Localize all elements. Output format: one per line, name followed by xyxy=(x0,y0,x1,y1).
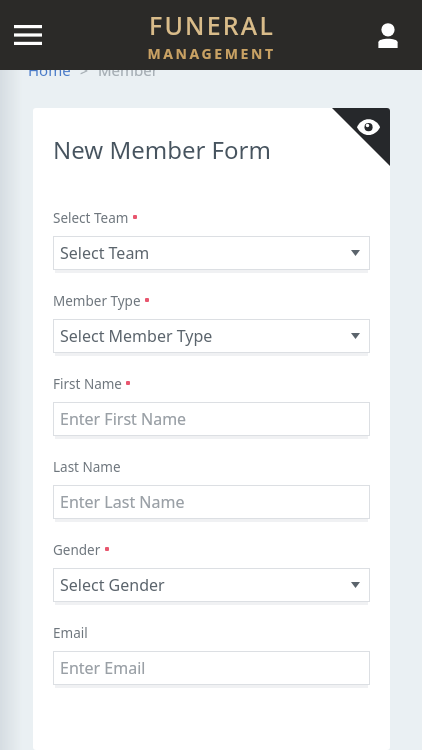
staticText: MANAGEMENT xyxy=(147,44,276,63)
staticText: FUNERAL xyxy=(149,8,275,42)
staticText: Select Team xyxy=(60,242,150,264)
button[interactable]: Select Team xyxy=(53,236,370,270)
staticText: Enter Last Name xyxy=(60,491,185,513)
staticText: New Member Form xyxy=(53,133,271,166)
staticText: Enter First Name xyxy=(60,408,187,430)
button[interactable]: Enter Email xyxy=(53,651,370,685)
button[interactable]: Account xyxy=(366,13,410,57)
button[interactable]: Select Gender xyxy=(53,568,370,602)
staticText: Select Member Type xyxy=(60,325,213,347)
button[interactable]: Home xyxy=(28,60,71,80)
staticText: Enter Email xyxy=(60,657,146,679)
staticText: First Name xyxy=(53,375,122,393)
button[interactable]: Preview form xyxy=(332,108,390,166)
staticText: Gender xyxy=(53,541,101,559)
staticText: > xyxy=(80,61,89,80)
staticText: Last Name xyxy=(53,458,121,476)
button[interactable]: Enter First Name xyxy=(53,402,370,436)
button[interactable]: Select Member Type xyxy=(53,319,370,353)
staticText: Member xyxy=(98,60,158,80)
staticText: Select Gender xyxy=(60,574,165,596)
button[interactable]: FUNERAL xyxy=(147,8,276,63)
staticText: Member Type xyxy=(53,292,141,310)
button[interactable]: Open navigation menu xyxy=(6,13,50,57)
staticText: Select Team xyxy=(53,209,129,227)
button[interactable]: Enter Last Name xyxy=(53,485,370,519)
staticText: Email xyxy=(53,624,88,642)
